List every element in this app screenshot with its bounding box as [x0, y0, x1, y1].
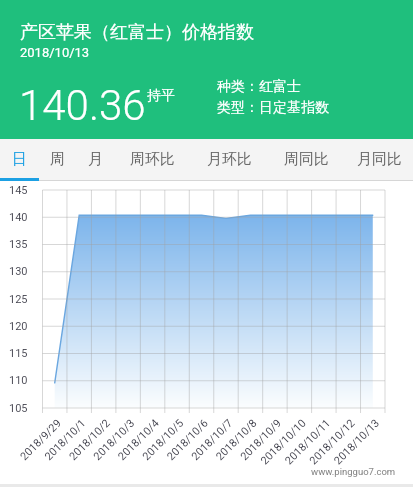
staticText: 月环比 [207, 150, 252, 169]
button[interactable]: 月同比 [345, 139, 413, 180]
button[interactable]: 周 [38, 139, 76, 180]
staticText: 种类：红富士 [217, 78, 301, 96]
button[interactable]: 周环比 [114, 139, 191, 180]
staticText: 月同比 [357, 150, 402, 169]
button[interactable]: 月 [76, 139, 114, 180]
staticText: 周环比 [130, 150, 175, 169]
staticText: 日 [12, 150, 27, 169]
staticText: 产区苹果（红富士）价格指数 [20, 21, 254, 44]
button[interactable]: 日 [0, 139, 38, 180]
staticText: 类型：日定基指数 [217, 99, 329, 117]
staticText: 周同比 [284, 150, 329, 169]
staticText: 持平 [147, 87, 175, 105]
staticText: 周 [50, 150, 65, 169]
staticText: 140.36 [19, 81, 146, 130]
button[interactable]: 周同比 [268, 139, 345, 180]
staticText: 2018/10/13 [20, 45, 90, 60]
staticText: 月 [88, 150, 103, 169]
button[interactable]: 月环比 [191, 139, 268, 180]
